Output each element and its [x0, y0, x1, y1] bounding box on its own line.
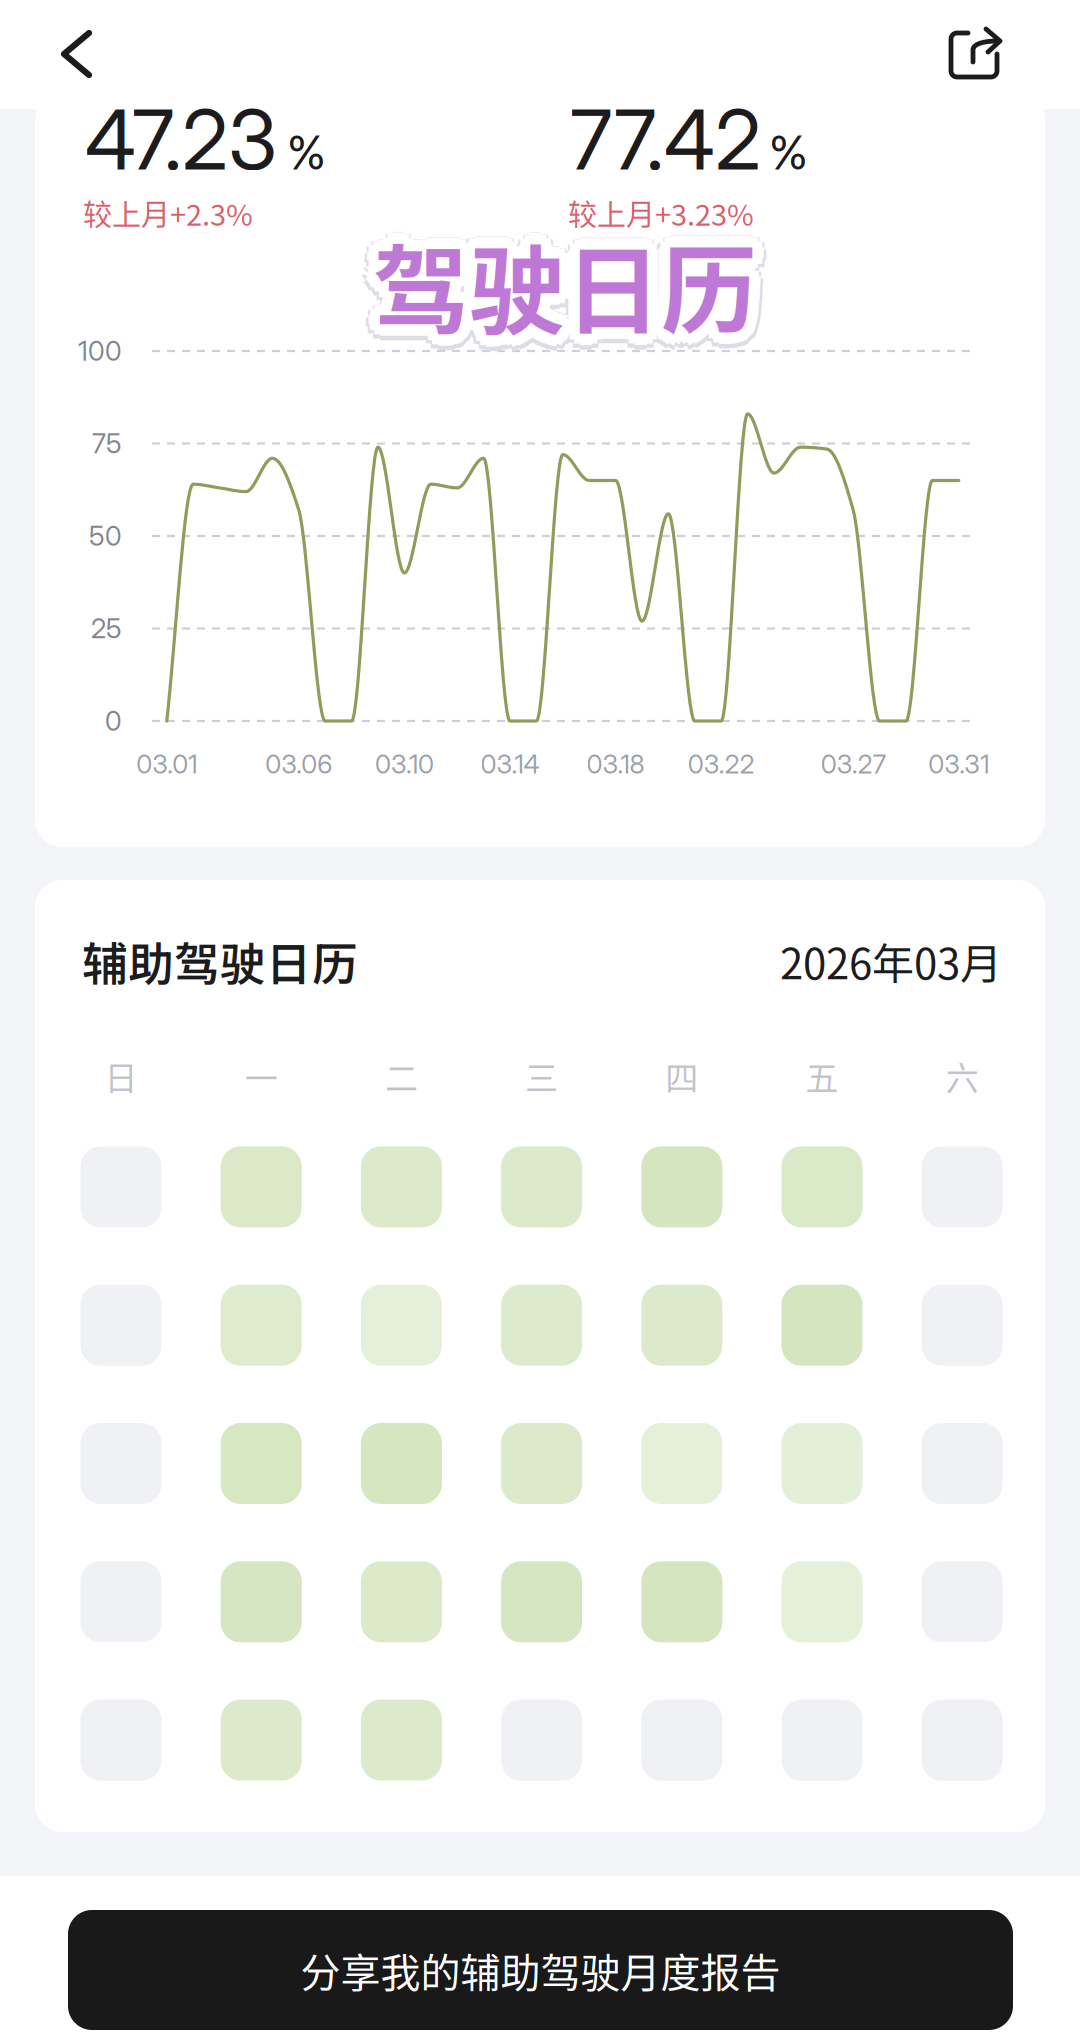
- staticText: 驾驶日历: [364, 214, 748, 353]
- staticText: 二: [385, 1052, 418, 1100]
- staticText: 驾驶日历: [370, 209, 754, 348]
- staticText: 驾驶日历: [381, 209, 765, 348]
- staticText: 驾驶日历: [371, 211, 755, 350]
- staticText: %: [287, 125, 326, 181]
- staticText: 驾驶日历: [365, 209, 749, 348]
- staticText: 驾驶日历: [373, 217, 757, 356]
- staticText: 驾驶日历: [361, 214, 745, 353]
- staticText: 驾驶日历: [373, 230, 757, 369]
- staticText: 较上月+2.3%: [83, 192, 253, 234]
- staticText: 驾驶日历: [381, 218, 765, 357]
- staticText: 驾驶日历: [379, 224, 763, 363]
- staticText: 驾驶日历: [368, 206, 752, 345]
- staticText: 驾驶日历: [376, 219, 760, 358]
- staticText: 驾驶日历: [365, 218, 749, 357]
- staticText: 03.10: [375, 748, 434, 780]
- staticText: 77.42: [570, 90, 761, 189]
- staticText: 驾驶日历: [367, 224, 751, 363]
- staticText: 驾驶日历: [373, 205, 757, 344]
- staticText: 03.06: [265, 748, 332, 780]
- staticText: 03.18: [587, 748, 645, 780]
- staticText: 驾驶日历: [379, 204, 763, 343]
- staticText: 驾驶日历: [374, 217, 758, 356]
- staticText: 03.14: [480, 748, 539, 780]
- staticText: 驾驶日历: [379, 214, 763, 353]
- staticText: 驾驶日历: [368, 211, 752, 350]
- staticText: 驾驶日历: [378, 211, 762, 350]
- staticText: 驾驶日历: [377, 222, 761, 361]
- staticText: 驾驶日历: [370, 215, 754, 354]
- staticText: 驾驶日历: [374, 211, 758, 350]
- staticText: 驾驶日历: [366, 228, 750, 367]
- staticText: 四: [665, 1052, 698, 1100]
- staticText: 驾驶日历: [363, 208, 747, 347]
- staticText: 驾驶日历: [377, 206, 761, 345]
- staticText: 驾驶日历: [367, 204, 751, 343]
- button[interactable]: 返回: [0, 0, 90, 90]
- staticText: %: [769, 125, 808, 181]
- staticText: 驾驶日历: [370, 212, 754, 351]
- staticText: 驾驶日历: [376, 215, 760, 354]
- staticText: 较上月+3.23%: [568, 192, 754, 234]
- staticText: 驾驶日历: [384, 214, 768, 353]
- staticText: 驾驶日历: [373, 225, 757, 364]
- staticText: 驾驶日历: [368, 217, 752, 356]
- staticText: 驾驶日历: [373, 223, 757, 362]
- staticText: 03.27: [821, 748, 886, 780]
- staticText: 一: [245, 1052, 278, 1100]
- staticText: 驾驶日历: [376, 212, 760, 351]
- staticText: 驾驶日历: [373, 202, 757, 341]
- staticText: 75: [92, 427, 122, 460]
- staticText: 驾驶日历: [370, 219, 754, 358]
- staticText: 驾驶日历: [383, 220, 767, 359]
- staticText: 驾驶日历: [387, 216, 771, 355]
- staticText: 驾驶日历: [373, 202, 757, 341]
- staticText: 驾驶日历: [383, 208, 767, 347]
- staticText: 03.01: [136, 748, 197, 780]
- staticText: 驾驶日历: [368, 222, 752, 361]
- staticText: 驾驶日历: [376, 209, 760, 348]
- staticText: 驾驶日历: [380, 204, 764, 343]
- staticText: 25: [91, 612, 122, 645]
- staticText: 驾驶日历: [376, 214, 760, 353]
- staticText: 驾驶日历: [363, 220, 747, 359]
- staticText: 驾驶日历: [385, 223, 769, 362]
- staticText: 2026年03月: [780, 931, 1002, 991]
- staticText: 驾驶日历: [373, 220, 757, 359]
- staticText: 驾驶日历: [373, 211, 757, 350]
- staticText: 驾驶日历: [385, 209, 769, 348]
- staticText: 驾驶日历: [373, 208, 757, 347]
- staticText: 47.23: [85, 90, 277, 189]
- staticText: 100: [78, 335, 122, 367]
- staticText: 五: [805, 1052, 838, 1100]
- staticText: 03.22: [688, 748, 755, 780]
- staticText: 驾驶日历: [361, 209, 745, 348]
- staticText: 驾驶日历: [370, 214, 754, 353]
- staticText: 日: [104, 1052, 137, 1100]
- staticText: 03.31: [928, 748, 989, 780]
- staticText: 驾驶日历: [359, 216, 743, 355]
- staticText: 驾驶日历: [373, 214, 757, 353]
- staticText: 分享我的辅助驾驶月度报告: [300, 1941, 780, 1999]
- staticText: 六: [946, 1052, 979, 1100]
- staticText: 驾驶日历: [367, 214, 751, 353]
- staticText: 50: [89, 520, 122, 552]
- staticText: 驾驶日历: [382, 214, 766, 353]
- staticText: 驾驶日历: [366, 204, 750, 343]
- button[interactable]: 分享: [0, 0, 110, 90]
- staticText: 三: [525, 1052, 558, 1100]
- button[interactable]: 分享我的辅助驾驶月度报告: [0, 0, 945, 120]
- staticText: 驾驶日历: [361, 223, 745, 362]
- staticText: 驾驶日历: [380, 228, 764, 367]
- staticText: 0: [105, 705, 122, 737]
- staticText: 驾驶日历: [371, 217, 755, 356]
- staticText: 辅助驾驶日历: [82, 928, 358, 994]
- staticText: 驾驶日历: [378, 217, 762, 356]
